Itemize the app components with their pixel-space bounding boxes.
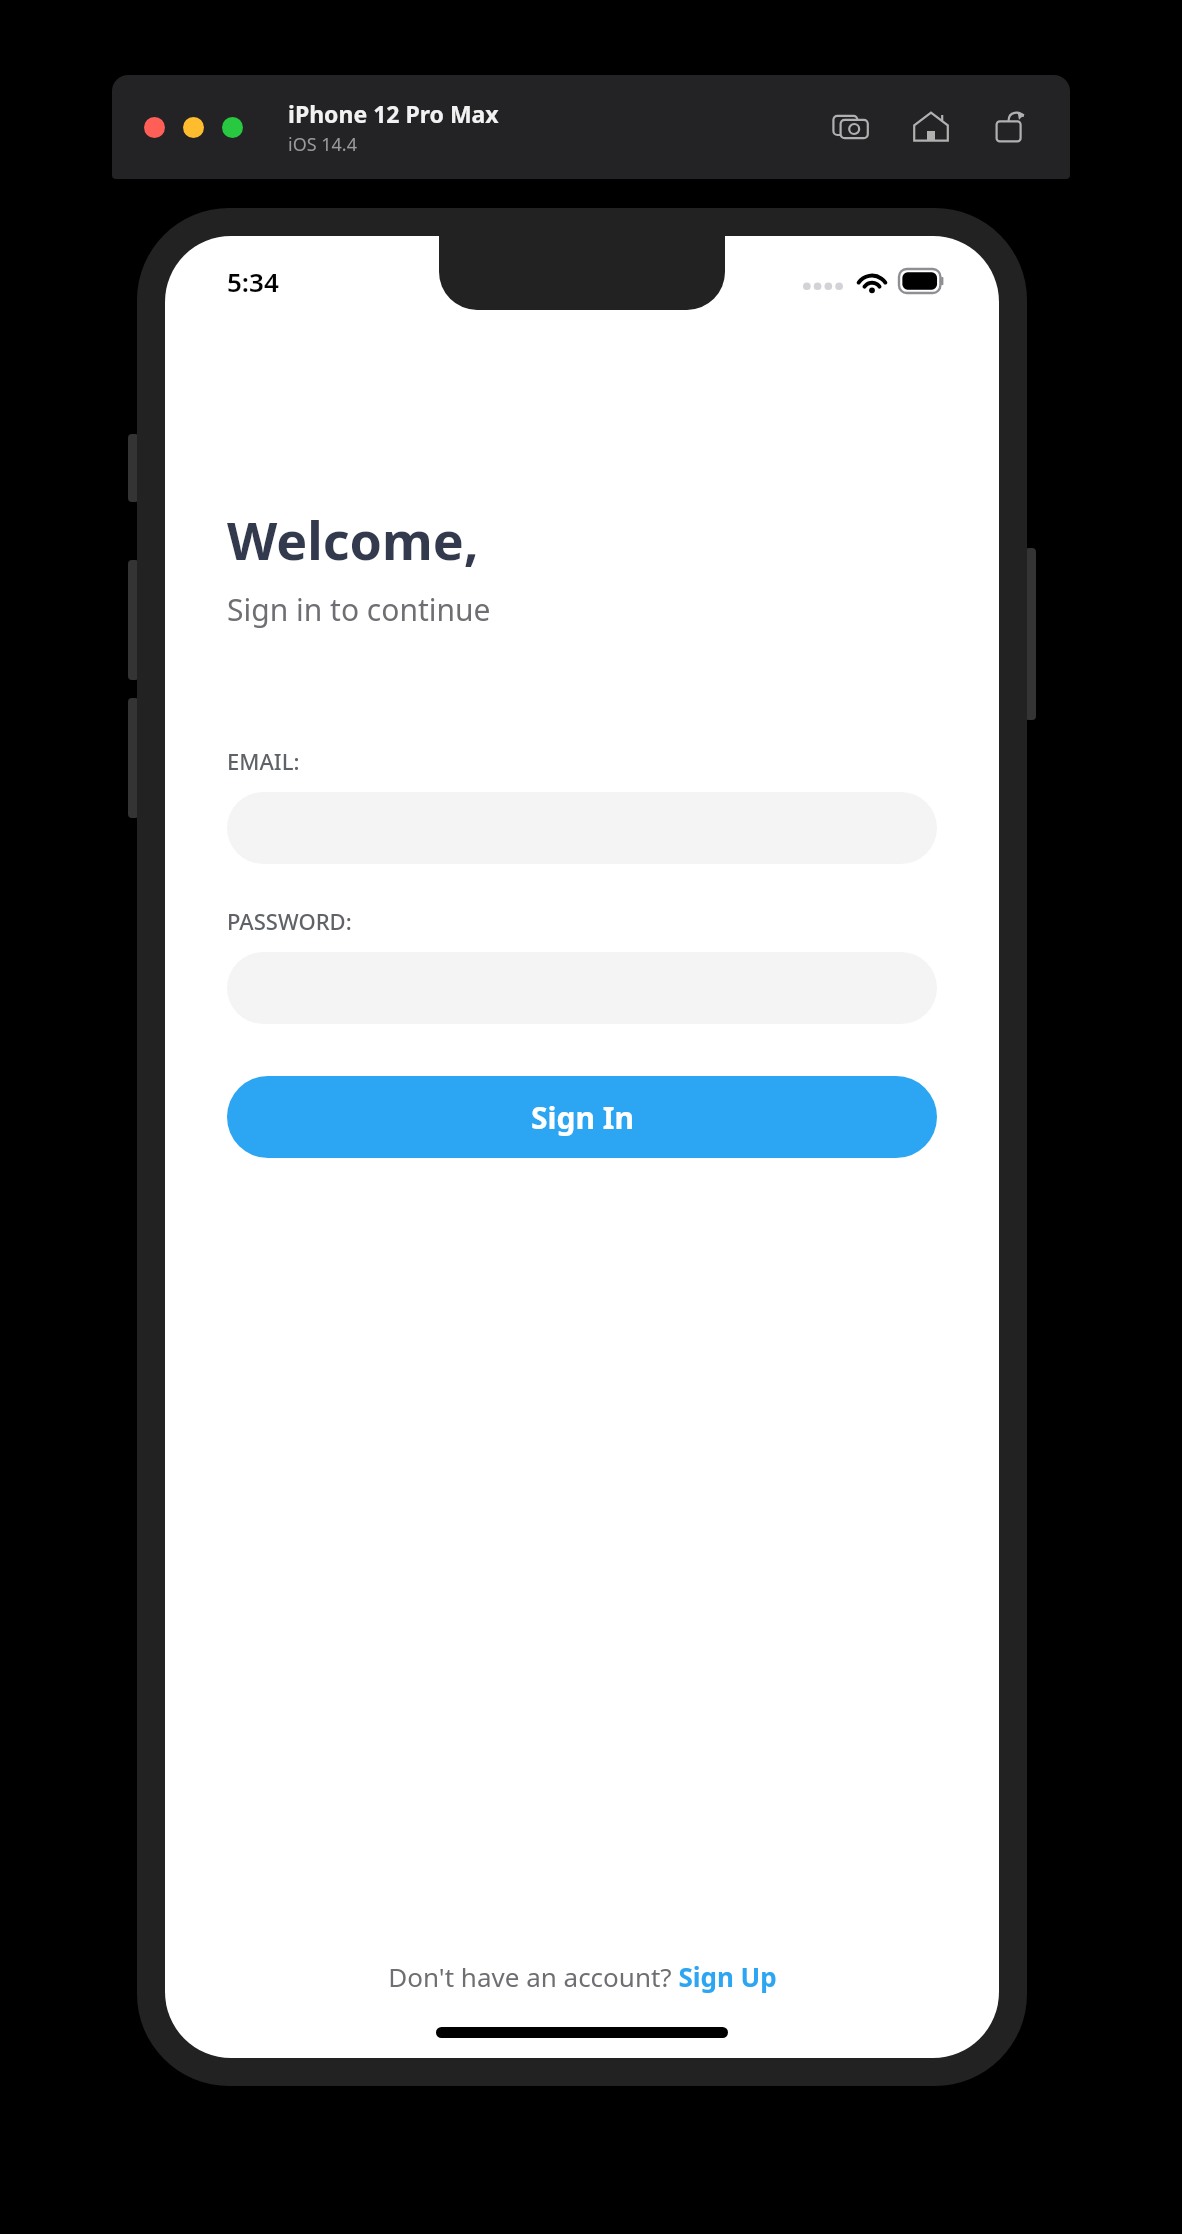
button[interactable]: Don't have an account? Sign Up — [376, 1953, 789, 2000]
button[interactable]: Zoom — [222, 117, 243, 138]
staticText: iPhone 12 Pro Max — [288, 98, 499, 129]
staticText: EMAIL: — [227, 746, 300, 776]
staticText: Sign In — [531, 1097, 634, 1138]
staticText: Don't have an account? Sign Up — [388, 1959, 777, 1994]
button[interactable]: Home — [908, 104, 954, 150]
staticText: iOS 14.4 — [288, 132, 357, 157]
button[interactable]: Share — [988, 104, 1034, 150]
staticText: Sign in to continue — [227, 589, 491, 630]
staticText: 5:34 — [227, 264, 279, 299]
button[interactable]: Close — [144, 117, 165, 138]
button[interactable]: Sign In — [227, 1076, 937, 1158]
button[interactable]: Screenshot — [828, 104, 874, 150]
staticText: PASSWORD: — [227, 906, 352, 936]
button[interactable]: Minimize — [183, 117, 204, 138]
staticText: Welcome, — [227, 504, 479, 575]
